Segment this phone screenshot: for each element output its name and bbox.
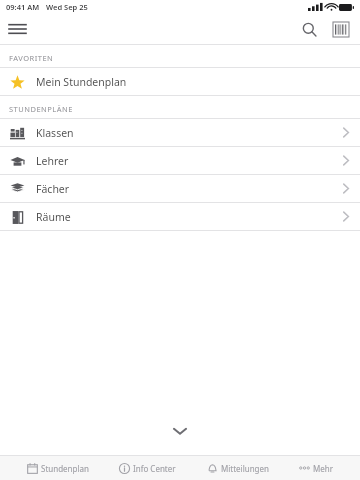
staticText: Mitteilungen bbox=[221, 463, 269, 474]
staticText: Stundenplan bbox=[41, 463, 89, 474]
staticText: Klassen bbox=[36, 126, 74, 140]
button[interactable]: Barcode scannen bbox=[324, 14, 358, 44]
staticText: Mehr bbox=[313, 463, 334, 474]
button[interactable]: Mitteilungen bbox=[203, 456, 272, 480]
button[interactable]: Menü bbox=[0, 14, 34, 44]
staticText: 09:41 AM bbox=[6, 2, 40, 12]
button[interactable]: Lehrer bbox=[0, 147, 360, 174]
button[interactable]: Klassen bbox=[0, 119, 360, 146]
staticText: Wed Sep 25 bbox=[46, 2, 88, 12]
staticText: Lehrer bbox=[36, 154, 69, 168]
button[interactable]: Fächer bbox=[0, 175, 360, 202]
button[interactable]: Räume bbox=[0, 203, 360, 230]
button[interactable]: Info Center bbox=[115, 456, 179, 480]
button[interactable]: Stundenplan bbox=[23, 456, 92, 480]
button[interactable]: Mehr bbox=[295, 456, 337, 480]
staticText: Fächer bbox=[36, 182, 70, 196]
staticText: Mein Stundenplan bbox=[36, 75, 127, 89]
staticText: STUNDENPLÄNE bbox=[9, 104, 73, 114]
staticText: FAVORITEN bbox=[9, 53, 54, 63]
staticText: Info Center bbox=[133, 463, 176, 474]
button[interactable]: Mein Stundenplan bbox=[0, 68, 360, 95]
button[interactable]: Einklappen bbox=[166, 417, 194, 445]
button[interactable]: Suche bbox=[294, 14, 324, 44]
staticText: Räume bbox=[36, 210, 71, 224]
